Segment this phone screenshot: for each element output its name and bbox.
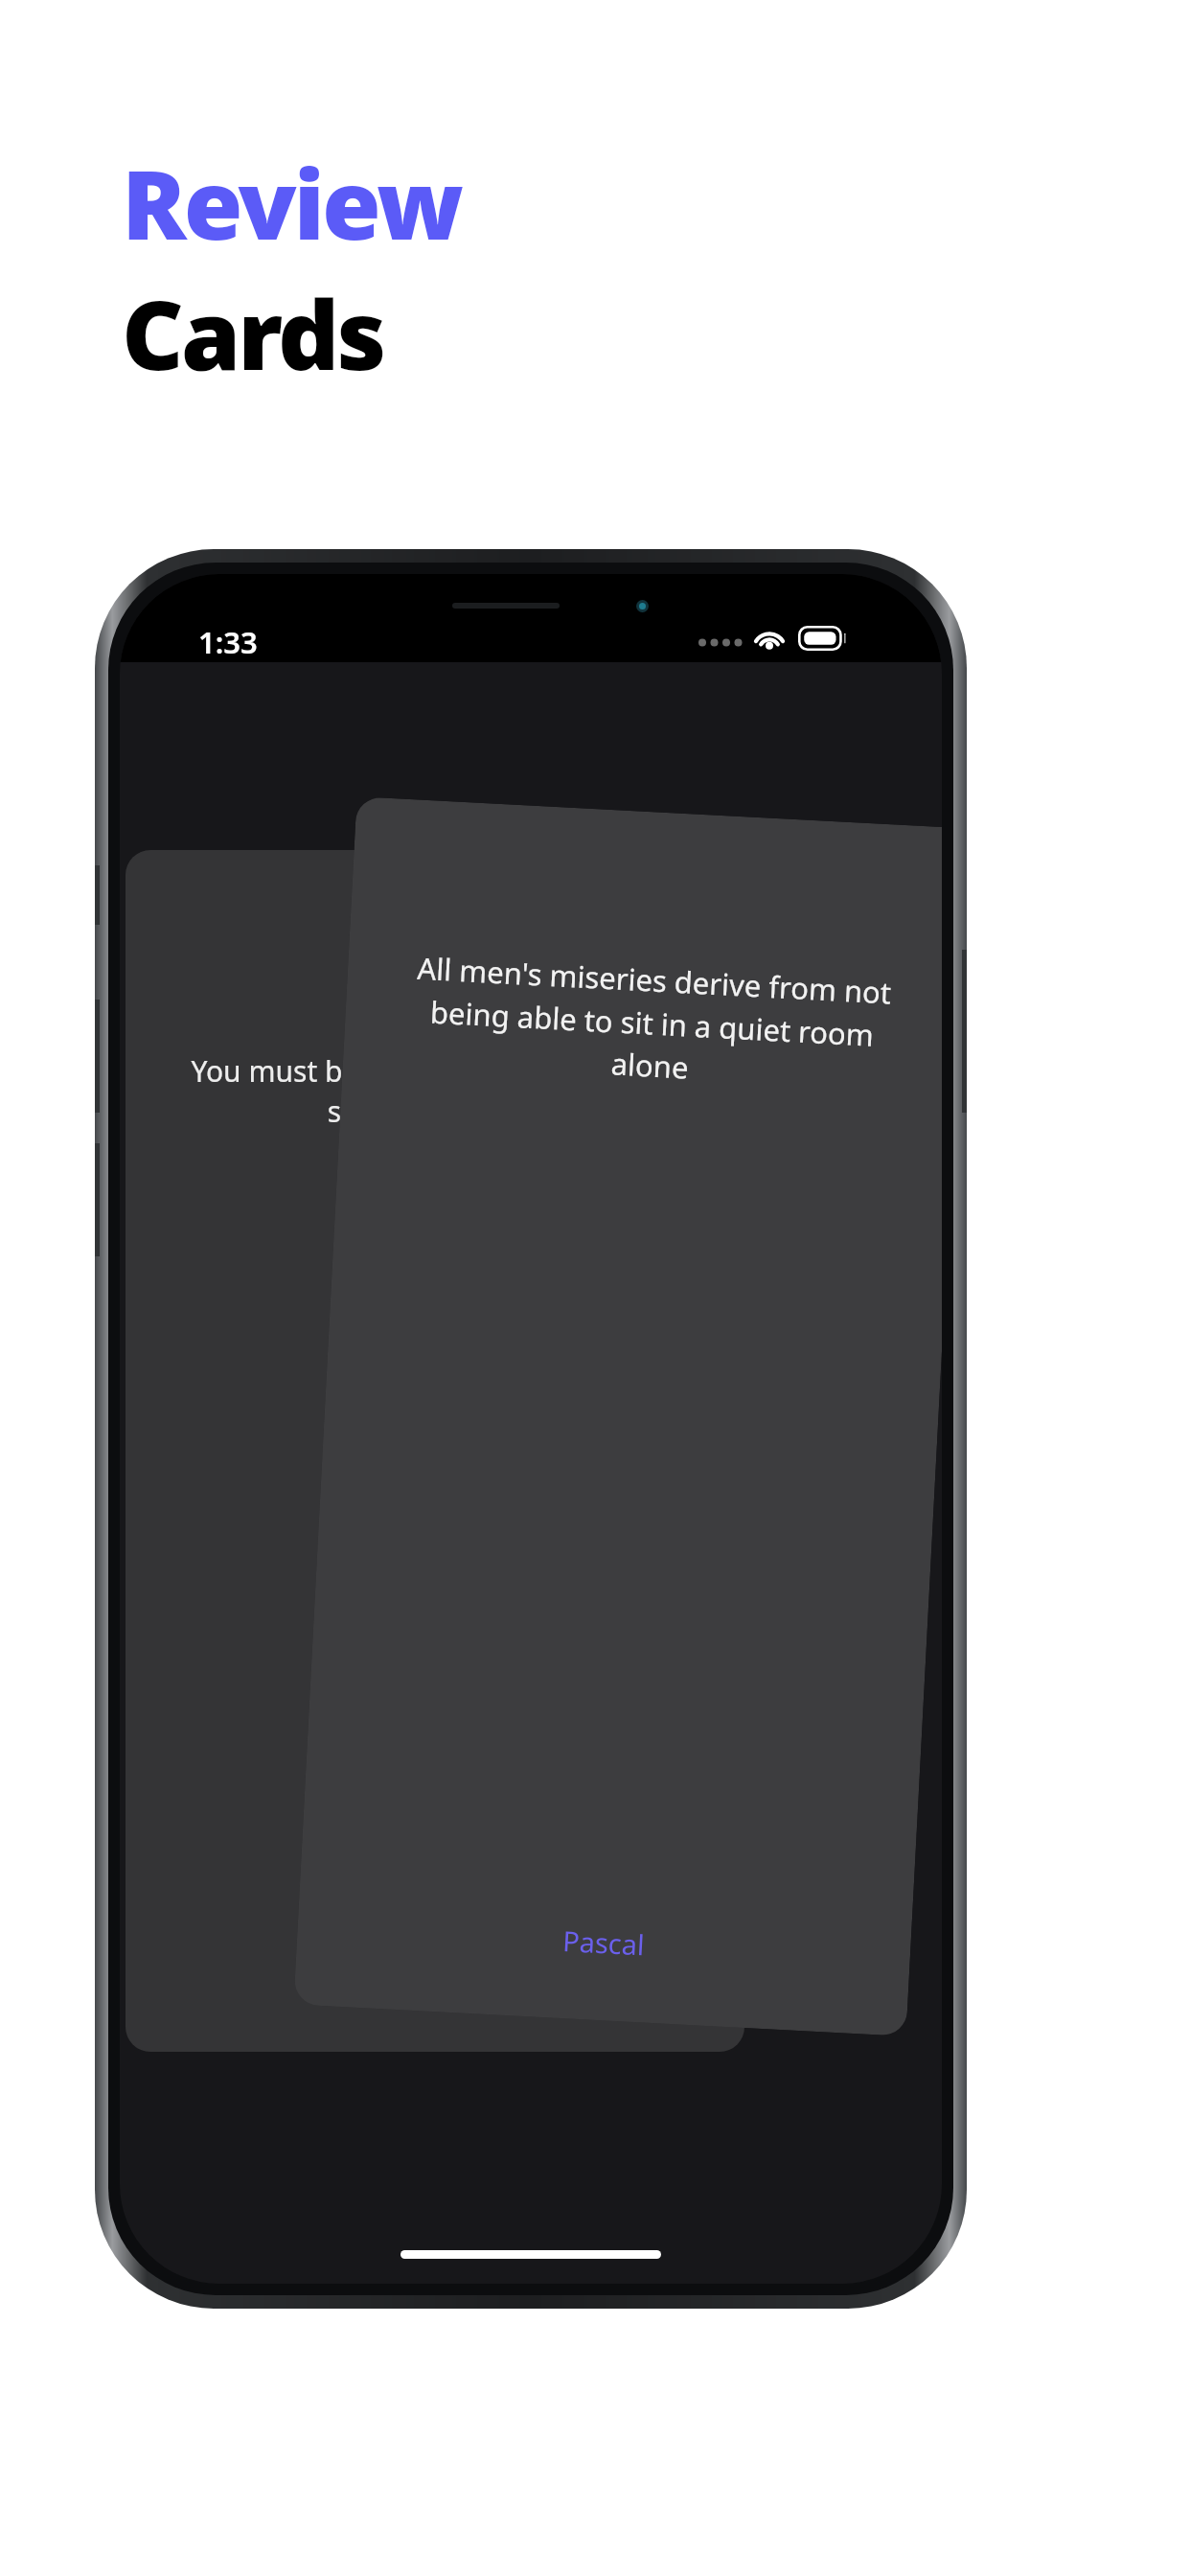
staticText: 1:33 (198, 622, 258, 662)
staticText: Pascal (562, 1921, 646, 1963)
staticText: You must be the change you wish to see i… (179, 1051, 691, 1131)
staticText: All men's miseries derive from not being… (385, 946, 919, 1099)
button[interactable]: You must be the change you wish to see i… (126, 850, 744, 2052)
other: Home (400, 2250, 661, 2259)
staticText: Cards (122, 267, 384, 398)
button[interactable]: All men's miseries derive from not being… (294, 796, 942, 2036)
staticText: Review (122, 137, 461, 267)
